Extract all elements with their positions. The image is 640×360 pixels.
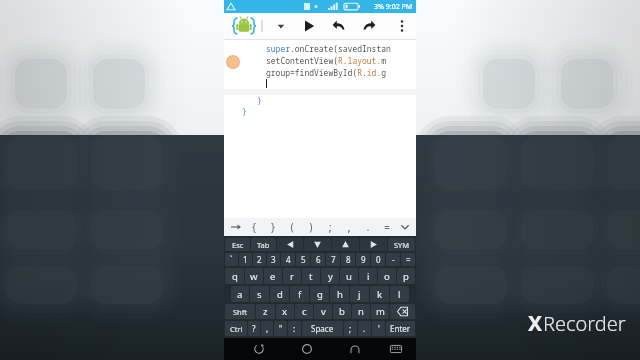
- button[interactable]: 7: [326, 253, 340, 266]
- button[interactable]: v: [314, 304, 332, 319]
- button[interactable]: Redo: [360, 17, 378, 35]
- button[interactable]: ": [274, 321, 287, 336]
- button[interactable]: }: [263, 218, 282, 236]
- button[interactable]: ?: [248, 321, 260, 336]
- button[interactable]: 8: [341, 253, 355, 266]
- button[interactable]: h: [330, 286, 349, 302]
- button[interactable]: ,: [261, 321, 273, 336]
- staticText: h: [337, 288, 343, 301]
- button[interactable]: :: [288, 321, 301, 336]
- button[interactable]: Back: [345, 339, 365, 359]
- button[interactable]: ): [301, 218, 320, 236]
- staticText: u: [346, 270, 352, 283]
- staticText: 2: [257, 254, 262, 265]
- button[interactable]: c: [295, 304, 313, 319]
- button[interactable]: Down: [304, 238, 331, 251]
- staticText: ;: [349, 323, 352, 334]
- button[interactable]: u: [340, 268, 358, 284]
- button[interactable]: Space: [302, 321, 343, 336]
- button[interactable]: Tab: [251, 238, 276, 251]
- staticText: ": [279, 323, 283, 334]
- button[interactable]: w: [245, 268, 263, 284]
- button[interactable]: g: [310, 286, 329, 302]
- button[interactable]: Undo: [330, 17, 348, 35]
- staticText: 6: [316, 254, 321, 265]
- button[interactable]: (: [282, 218, 301, 236]
- staticText: ': [378, 323, 380, 334]
- button[interactable]: 5: [296, 253, 310, 266]
- button[interactable]: y: [321, 268, 339, 284]
- button[interactable]: e: [264, 268, 282, 284]
- button[interactable]: AIDE app icon: [232, 14, 256, 38]
- button[interactable]: 1: [239, 253, 252, 266]
- button[interactable]: {: [244, 218, 263, 236]
- button[interactable]: ;: [344, 321, 357, 336]
- button[interactable]: 3: [267, 253, 280, 266]
- staticText: v: [321, 305, 326, 318]
- staticText: p: [403, 270, 409, 283]
- button[interactable]: 0: [371, 253, 385, 266]
- button[interactable]: 4: [281, 253, 295, 266]
- button[interactable]: b: [333, 304, 351, 319]
- button[interactable]: 9: [356, 253, 370, 266]
- button[interactable]: o: [378, 268, 396, 284]
- button[interactable]: Select configuration: [272, 17, 290, 35]
- button[interactable]: Shft: [225, 304, 255, 319]
- button[interactable]: m: [371, 304, 389, 319]
- button[interactable]: `: [225, 253, 238, 266]
- staticText: ,: [266, 323, 269, 334]
- button[interactable]: d: [270, 286, 289, 302]
- button[interactable]: q: [225, 268, 244, 284]
- staticText: 3% 9:02 PM: [374, 2, 413, 12]
- button[interactable]: z: [256, 304, 275, 319]
- button[interactable]: Right: [360, 238, 387, 251]
- button[interactable]: l: [390, 286, 409, 302]
- button[interactable]: Switch keyboard: [386, 339, 406, 359]
- button[interactable]: j: [350, 286, 369, 302]
- button[interactable]: 2: [253, 253, 266, 266]
- staticText: d: [277, 288, 283, 301]
- staticText: 0: [376, 254, 381, 265]
- button[interactable]: t: [302, 268, 320, 284]
- staticText: ): [308, 220, 314, 234]
- button[interactable]: k: [370, 286, 389, 302]
- button[interactable]: i: [359, 268, 377, 284]
- staticText: }: [257, 95, 262, 106]
- staticText: ;: [327, 220, 333, 234]
- button[interactable]: .: [358, 321, 371, 336]
- button[interactable]: Run: [300, 17, 318, 35]
- button[interactable]: .: [358, 218, 377, 236]
- staticText: :: [293, 323, 296, 334]
- staticText: X: [528, 309, 543, 338]
- button[interactable]: =: [377, 218, 396, 236]
- button[interactable]: ;: [320, 218, 339, 236]
- button[interactable]: ,: [339, 218, 358, 236]
- button[interactable]: SYM: [388, 238, 415, 251]
- button[interactable]: Backspace: [390, 304, 415, 319]
- button[interactable]: More options: [393, 17, 411, 35]
- button[interactable]: p: [397, 268, 415, 284]
- staticText: Tab: [257, 240, 270, 250]
- button[interactable]: x: [276, 304, 294, 319]
- button[interactable]: Ctrl: [225, 321, 247, 336]
- button[interactable]: Recent apps: [249, 339, 269, 359]
- button[interactable]: Tab: [228, 219, 244, 235]
- button[interactable]: Enter: [386, 321, 415, 336]
- button[interactable]: r: [283, 268, 301, 284]
- button[interactable]: Esc: [225, 238, 250, 251]
- button[interactable]: s: [250, 286, 269, 302]
- button[interactable]: f: [290, 286, 309, 302]
- button[interactable]: -: [386, 253, 400, 266]
- button[interactable]: =: [401, 253, 415, 266]
- button[interactable]: n: [352, 304, 370, 319]
- button[interactable]: 6: [311, 253, 325, 266]
- staticText: 4: [286, 254, 291, 265]
- button[interactable]: Hide keyboard: [396, 218, 414, 236]
- staticText: super.onCreate(savedInstan: [266, 43, 391, 54]
- staticText: b: [339, 305, 345, 318]
- button[interactable]: a: [231, 286, 249, 302]
- button[interactable]: Up: [332, 238, 359, 251]
- button[interactable]: Left: [277, 238, 303, 251]
- button[interactable]: Home: [297, 339, 317, 359]
- button[interactable]: ': [372, 321, 385, 336]
